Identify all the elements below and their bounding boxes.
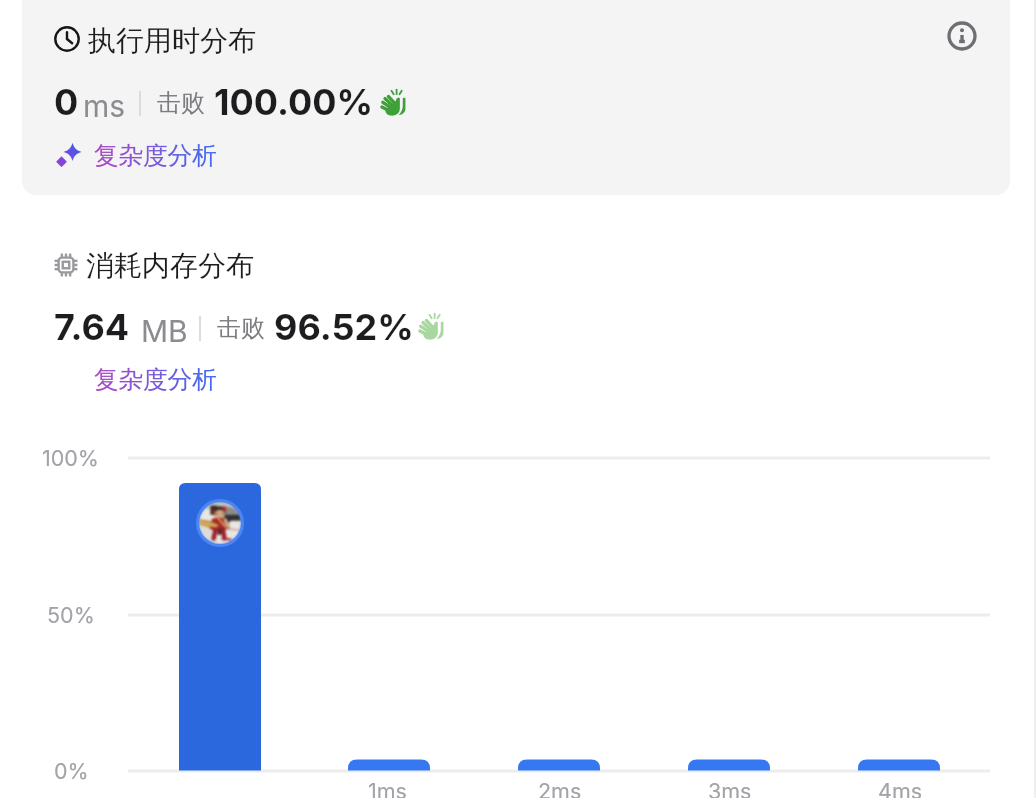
staticText: 复杂度分析 <box>94 140 217 171</box>
button[interactable]: 复杂度分析 <box>94 362 220 396</box>
staticText: 50% <box>47 602 95 628</box>
button[interactable] <box>22 0 1010 195</box>
staticText: 4ms <box>878 778 923 798</box>
staticText: 复杂度分析 <box>94 364 217 395</box>
staticText: 96.52% <box>274 305 414 349</box>
staticText: 100.00% <box>214 80 374 124</box>
staticText: 执行用时分布 <box>88 23 256 58</box>
staticText: 击败 <box>157 88 205 118</box>
staticText: 0% <box>54 758 89 784</box>
staticText: 1ms <box>368 778 407 798</box>
button[interactable]: Info <box>947 21 977 51</box>
staticText: 100% <box>42 445 99 471</box>
staticText: 3ms <box>708 778 752 798</box>
staticText: 击败 <box>217 313 265 343</box>
staticText: 0 <box>54 80 79 124</box>
staticText: 2ms <box>538 778 582 798</box>
staticText: MB <box>141 313 188 349</box>
staticText: 7.64 <box>54 305 130 349</box>
button[interactable]: 复杂度分析 <box>55 138 217 172</box>
staticText: 消耗内存分布 <box>86 248 254 283</box>
staticText: ms <box>83 88 126 124</box>
